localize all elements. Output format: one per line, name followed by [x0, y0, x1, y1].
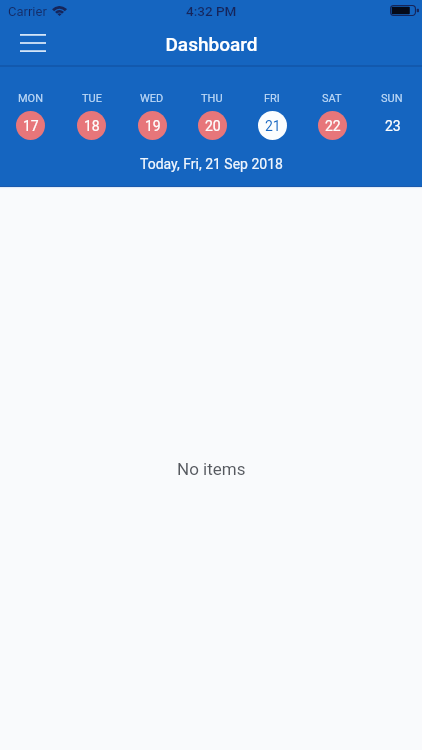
staticText: 4:32 PM	[186, 3, 237, 19]
button[interactable]: SUN	[362, 92, 422, 140]
staticText: TUE	[82, 92, 102, 105]
staticText: 22	[325, 118, 341, 134]
staticText: THU	[201, 92, 223, 105]
button[interactable]: TUE	[61, 92, 122, 140]
staticText: SAT	[322, 92, 342, 105]
button[interactable]: MON	[0, 92, 61, 140]
button[interactable]: Open navigation menu	[10, 22, 56, 66]
staticText: WED	[140, 92, 164, 105]
staticText: No items	[177, 459, 246, 479]
staticText: Dashboard	[165, 33, 258, 55]
button[interactable]: SAT	[302, 92, 362, 140]
staticText: SUN	[381, 92, 403, 105]
staticText: 21	[265, 118, 281, 134]
staticText: 20	[205, 118, 221, 134]
staticText: MON	[18, 92, 44, 105]
staticText: FRI	[264, 92, 280, 105]
staticText: 18	[84, 118, 100, 134]
staticText: 17	[23, 118, 39, 134]
staticText: Today, Fri, 21 Sep 2018	[140, 156, 283, 172]
staticText: 23	[385, 118, 401, 134]
staticText: 19	[145, 118, 161, 134]
button[interactable]: FRI	[242, 92, 302, 140]
button[interactable]: WED	[122, 92, 182, 140]
staticText: Carrier	[8, 4, 47, 19]
button[interactable]: THU	[182, 92, 242, 140]
